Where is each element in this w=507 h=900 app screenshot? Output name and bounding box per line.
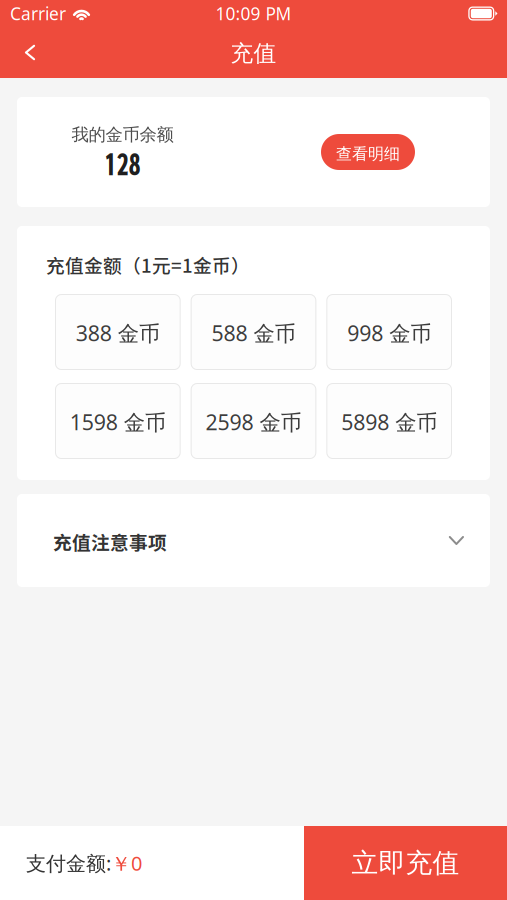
staticText: 128 bbox=[104, 145, 140, 182]
button[interactable]: 查看明细 bbox=[321, 134, 415, 170]
staticText: 388 金币 bbox=[76, 319, 160, 347]
staticText: ￥0 bbox=[111, 850, 142, 876]
button[interactable]: 388 金币 bbox=[55, 294, 181, 370]
button[interactable]: 2598 金币 bbox=[191, 383, 316, 459]
staticText: 我的金币余额 bbox=[71, 124, 173, 145]
staticText: 998 金币 bbox=[347, 319, 431, 347]
button[interactable]: 充值注意事项 bbox=[17, 494, 490, 587]
staticText: 5898 金币 bbox=[341, 408, 437, 436]
button[interactable]: 998 金币 bbox=[326, 294, 452, 370]
staticText: 充值金额（1元=1金币） bbox=[46, 251, 250, 278]
staticText: Carrier bbox=[10, 2, 66, 25]
staticText: 10:09 PM bbox=[215, 2, 291, 25]
button[interactable]: 588 金币 bbox=[191, 294, 316, 370]
staticText: 588 金币 bbox=[211, 319, 295, 347]
button[interactable]: 1598 金币 bbox=[55, 383, 181, 459]
staticText: 充值注意事项 bbox=[53, 528, 167, 555]
button[interactable]: 5898 金币 bbox=[326, 383, 452, 459]
staticText: 2598 金币 bbox=[205, 408, 301, 436]
staticText: 支付金额: bbox=[26, 850, 111, 876]
staticText: 充值 bbox=[230, 40, 276, 67]
button[interactable]: Back bbox=[10, 30, 50, 74]
button[interactable]: 立即充值 bbox=[304, 826, 507, 900]
staticText: 立即充值 bbox=[351, 847, 459, 879]
staticText: 查看明细 bbox=[336, 144, 400, 164]
staticText: 1598 金币 bbox=[70, 408, 166, 436]
